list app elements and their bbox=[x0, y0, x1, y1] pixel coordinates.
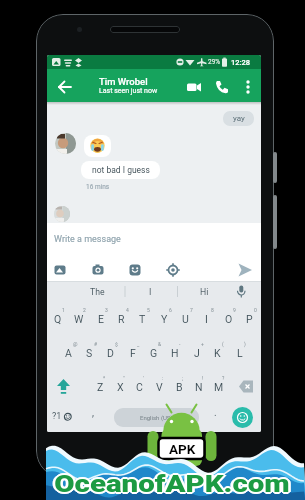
staticText: S bbox=[86, 347, 93, 359]
staticText: B bbox=[176, 381, 183, 393]
staticText: P bbox=[246, 313, 253, 325]
button[interactable]: Q bbox=[47, 306, 68, 332]
staticText: N bbox=[195, 381, 203, 393]
staticText: yay bbox=[233, 114, 245, 123]
staticText: O bbox=[225, 313, 233, 325]
button[interactable]: J bbox=[186, 340, 207, 366]
staticText: English (US) bbox=[140, 414, 173, 421]
staticText: 1 bbox=[62, 307, 65, 313]
button[interactable]: S bbox=[79, 340, 100, 366]
staticText: D bbox=[107, 347, 114, 359]
staticText: OceanofAPK.com bbox=[54, 471, 290, 498]
staticText: , bbox=[92, 407, 94, 419]
button[interactable]: T bbox=[132, 306, 153, 332]
staticText: 5 bbox=[147, 307, 150, 313]
button[interactable]: L bbox=[229, 340, 250, 366]
button[interactable]: M bbox=[209, 373, 229, 400]
staticText: & bbox=[158, 341, 162, 347]
button[interactable]: N bbox=[189, 373, 209, 400]
button[interactable]: H bbox=[164, 340, 185, 366]
staticText: W bbox=[74, 313, 84, 325]
staticText: F bbox=[130, 347, 136, 359]
button[interactable] bbox=[125, 260, 145, 280]
button[interactable]: W bbox=[68, 306, 89, 332]
staticText: H bbox=[171, 347, 179, 359]
staticText: Last seen just now bbox=[99, 87, 158, 95]
staticText: ( bbox=[222, 341, 224, 347]
staticText: 4 bbox=[126, 307, 129, 313]
button[interactable]: The bbox=[75, 281, 119, 302]
button[interactable]: P bbox=[239, 306, 260, 332]
staticText: * bbox=[103, 375, 106, 381]
button[interactable]: X bbox=[110, 373, 130, 400]
staticText: Q bbox=[54, 313, 62, 325]
staticText: 2 bbox=[83, 307, 86, 313]
staticText: Write a message bbox=[54, 234, 121, 245]
button[interactable] bbox=[240, 76, 256, 98]
staticText: T bbox=[139, 313, 146, 325]
staticText: G bbox=[150, 347, 158, 359]
staticText: 12:28 bbox=[231, 58, 251, 67]
staticText: ) bbox=[244, 341, 246, 347]
button[interactable]: E bbox=[90, 306, 111, 332]
staticText: Hi bbox=[200, 287, 209, 297]
button[interactable]: C bbox=[129, 373, 149, 400]
button[interactable]: R bbox=[111, 306, 132, 332]
button[interactable] bbox=[53, 76, 77, 98]
staticText: I bbox=[149, 287, 152, 297]
staticText: _ bbox=[137, 341, 140, 347]
staticText: # bbox=[94, 341, 98, 347]
button[interactable]: I bbox=[128, 281, 172, 302]
staticText: 7 bbox=[190, 307, 193, 313]
button[interactable] bbox=[50, 260, 70, 280]
button[interactable]: G bbox=[143, 340, 164, 366]
button[interactable] bbox=[51, 373, 79, 400]
button[interactable] bbox=[183, 76, 206, 98]
button[interactable]: A bbox=[58, 340, 79, 366]
button[interactable]: U bbox=[175, 306, 196, 332]
staticText: K bbox=[214, 347, 221, 359]
button[interactable]: V bbox=[149, 373, 169, 400]
button[interactable] bbox=[234, 259, 256, 281]
staticText: ? bbox=[222, 375, 225, 381]
button[interactable] bbox=[88, 260, 108, 280]
staticText: ?1 bbox=[52, 411, 62, 422]
button[interactable]: F bbox=[122, 340, 143, 366]
button[interactable]: English (US) bbox=[114, 408, 199, 427]
staticText: 6 bbox=[169, 307, 172, 313]
staticText: OceanofAPK.com bbox=[52, 471, 287, 498]
staticText: : bbox=[162, 375, 164, 381]
staticText: $ bbox=[115, 341, 118, 347]
staticText: ; bbox=[182, 375, 184, 381]
staticText: OceanofAPK.com bbox=[54, 469, 290, 496]
button[interactable]: D bbox=[100, 340, 121, 366]
button[interactable] bbox=[211, 76, 234, 98]
staticText: Z bbox=[97, 381, 104, 393]
staticText: ' bbox=[143, 375, 144, 381]
staticText: J bbox=[194, 347, 200, 359]
button[interactable]: ?1 bbox=[49, 404, 81, 430]
staticText: A bbox=[65, 347, 72, 359]
button[interactable] bbox=[232, 407, 253, 428]
button[interactable]: I bbox=[196, 306, 217, 332]
staticText: C bbox=[136, 381, 143, 393]
staticText: OceanofAPK.com bbox=[57, 471, 292, 498]
button[interactable]: Z bbox=[90, 373, 110, 400]
button[interactable]: Hi bbox=[182, 281, 226, 302]
staticText: " bbox=[123, 375, 125, 381]
staticText: 8 bbox=[211, 307, 214, 313]
staticText: OceanofAPK.com bbox=[55, 470, 291, 497]
button[interactable] bbox=[163, 260, 183, 280]
staticText: 3 bbox=[105, 307, 108, 313]
staticText: R bbox=[118, 313, 125, 325]
staticText: M bbox=[214, 381, 224, 393]
button[interactable]: B bbox=[169, 373, 189, 400]
staticText: ! bbox=[202, 375, 204, 381]
staticText: U bbox=[182, 313, 189, 325]
button[interactable]: K bbox=[207, 340, 228, 366]
button[interactable]: O bbox=[218, 306, 239, 332]
button[interactable]: Y bbox=[154, 306, 175, 332]
staticText: 9 bbox=[233, 307, 236, 313]
staticText: 16 mins bbox=[86, 183, 110, 191]
button[interactable] bbox=[229, 373, 259, 400]
